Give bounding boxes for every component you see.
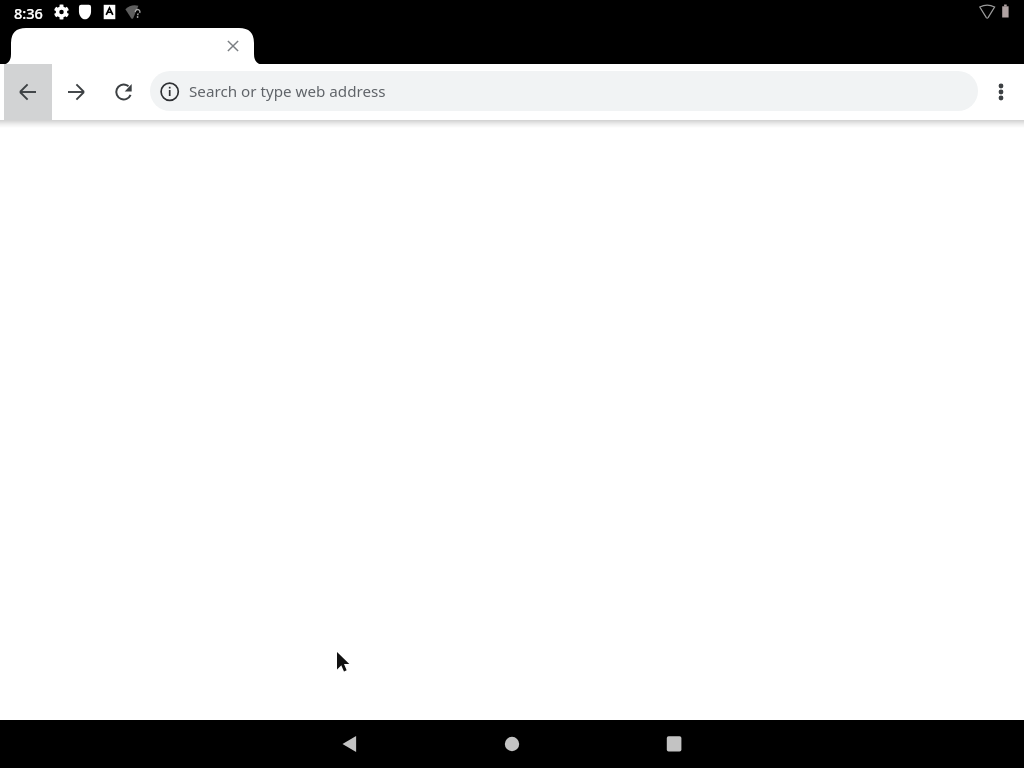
button[interactable]: More options	[987, 68, 1015, 116]
button[interactable]: Search or type web address	[150, 71, 978, 111]
button[interactable]: Reload	[100, 64, 148, 120]
button[interactable]: Back	[325, 720, 373, 768]
button[interactable]: Back	[4, 64, 52, 120]
button[interactable]: Home	[488, 720, 536, 768]
button[interactable]: Close tab	[221, 34, 245, 58]
button[interactable]: Recent apps	[650, 720, 698, 768]
staticText: Search or type web address	[189, 81, 386, 102]
staticText: 8:36	[14, 3, 43, 23]
button[interactable]: Forward	[52, 64, 100, 120]
